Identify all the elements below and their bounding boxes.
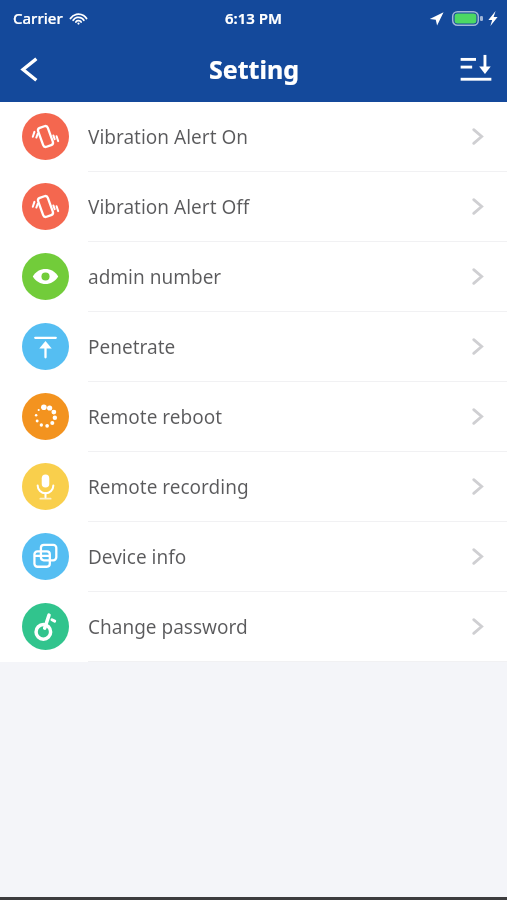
button[interactable]: Change password: [0, 592, 507, 661]
button[interactable]: Vibration Alert On: [0, 102, 507, 171]
staticText: 6:13 PM: [225, 8, 282, 28]
staticText: Vibration Alert Off: [88, 194, 468, 220]
staticText: Change password: [88, 614, 468, 640]
button[interactable]: Back: [0, 40, 58, 98]
button[interactable]: Sort: [445, 38, 507, 100]
button[interactable]: admin number: [0, 242, 507, 311]
staticText: Device info: [88, 544, 468, 570]
staticText: Remote recording: [88, 474, 468, 500]
button[interactable]: Penetrate: [0, 312, 507, 381]
button[interactable]: Remote reboot: [0, 382, 507, 451]
staticText: Remote reboot: [88, 404, 468, 430]
staticText: admin number: [88, 264, 468, 290]
button[interactable]: Vibration Alert Off: [0, 172, 507, 241]
staticText: Carrier: [13, 8, 63, 28]
button[interactable]: Remote recording: [0, 452, 507, 521]
staticText: Setting: [209, 52, 299, 86]
staticText: Vibration Alert On: [88, 124, 468, 150]
staticText: Penetrate: [88, 334, 468, 360]
button[interactable]: Device info: [0, 522, 507, 591]
